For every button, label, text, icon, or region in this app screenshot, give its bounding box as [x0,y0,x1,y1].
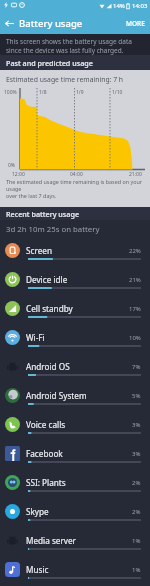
staticText: Battery usage [19,17,83,30]
staticText: MORE [126,19,145,28]
staticText: Media server [26,535,76,546]
staticText: Estimated usage time remaining: 7 h [6,75,124,84]
staticText: 1/9 [76,89,84,96]
staticText: 2% [132,479,141,487]
button[interactable]: Back [0,14,19,33]
button[interactable]: Music [0,558,150,586]
staticText: The estimated usage time remaining is ba… [6,178,150,199]
staticText: 17% [129,305,141,313]
button[interactable]: Facebook [0,442,150,471]
staticText: 100% [4,89,17,96]
staticText: 1/8 [39,89,47,96]
staticText: 04:00 [70,171,83,178]
staticText: Music [26,564,49,575]
button[interactable]: Media server [0,529,150,558]
staticText: 1% [132,537,141,545]
button[interactable]: Wi-Fi [0,326,150,355]
staticText: Facebook [26,448,63,459]
button[interactable]: Voice calls [0,413,150,442]
staticText: Android OS [26,361,70,372]
button[interactable]: Cell standby [0,297,150,326]
staticText: 14:03 [132,2,148,10]
staticText: 21% [129,276,141,284]
staticText: 12:00 [12,171,25,178]
staticText: 3d 2h 10m 25s on battery [6,224,100,235]
staticText: Screen [26,245,52,256]
staticText: This screen shows the battery usage data… [6,37,132,55]
staticText: Cell standby [26,303,73,314]
staticText: Wi-Fi [26,332,45,343]
staticText: 10% [129,334,141,342]
staticText: 22% [129,247,141,255]
button[interactable]: Android OS [0,355,150,384]
staticText: 1% [132,566,141,574]
staticText: 2% [132,508,141,516]
staticText: 5% [132,392,141,400]
button[interactable]: Device idle [0,268,150,297]
staticText: Recent battery usage [6,209,80,219]
staticText: 21:00 [129,171,142,178]
button[interactable]: Screen [0,239,150,268]
staticText: 3% [132,421,141,429]
staticText: Device idle [26,274,68,285]
staticText: 1/10 [112,89,123,96]
staticText: 0% [8,162,16,169]
staticText: Voice calls [26,419,66,430]
staticText: SSI: Plants [26,477,66,488]
button[interactable]: Android System [0,384,150,413]
staticText: Android System [26,390,87,401]
staticText: Past and predicted usage [6,58,93,68]
staticText: 7% [132,363,141,371]
button[interactable]: MORE [121,14,150,33]
staticText: 14% [113,2,125,10]
button[interactable]: Skype [0,500,150,529]
staticText: 3% [132,450,141,458]
staticText: Skype [26,506,49,517]
button[interactable]: SSI: Plants [0,471,150,500]
